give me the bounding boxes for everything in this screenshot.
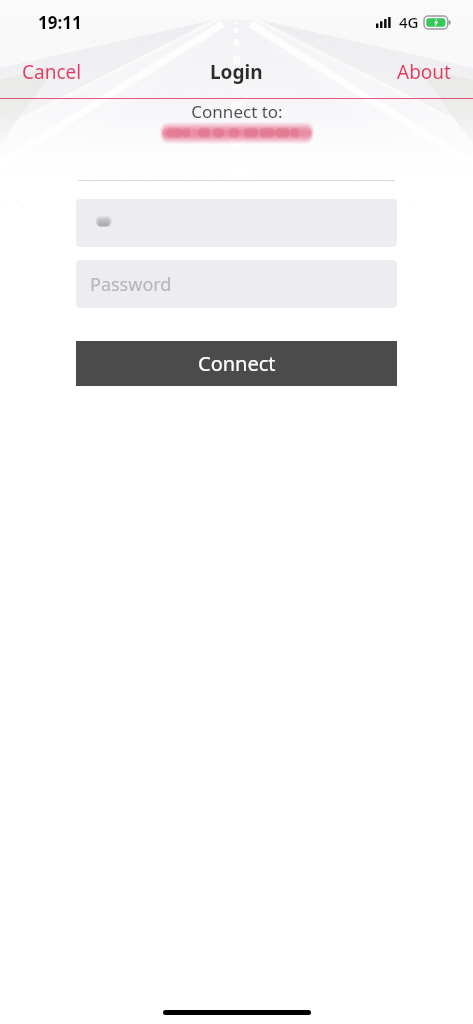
button[interactable]: About — [375, 49, 473, 95]
staticText: Login — [210, 59, 263, 85]
staticText: Connect — [198, 350, 276, 377]
staticText: Connect to: — [191, 100, 283, 123]
button[interactable]: Password — [76, 260, 397, 308]
other: Home indicator — [163, 1010, 311, 1015]
button[interactable] — [76, 199, 397, 247]
staticText: About — [397, 59, 451, 85]
staticText: 4G — [399, 12, 419, 32]
button[interactable]: Connect — [76, 341, 397, 386]
staticText: Password — [90, 272, 172, 297]
staticText: 19:11 — [38, 11, 82, 34]
staticText: Cancel — [22, 59, 82, 85]
button[interactable]: Cancel — [0, 49, 104, 95]
